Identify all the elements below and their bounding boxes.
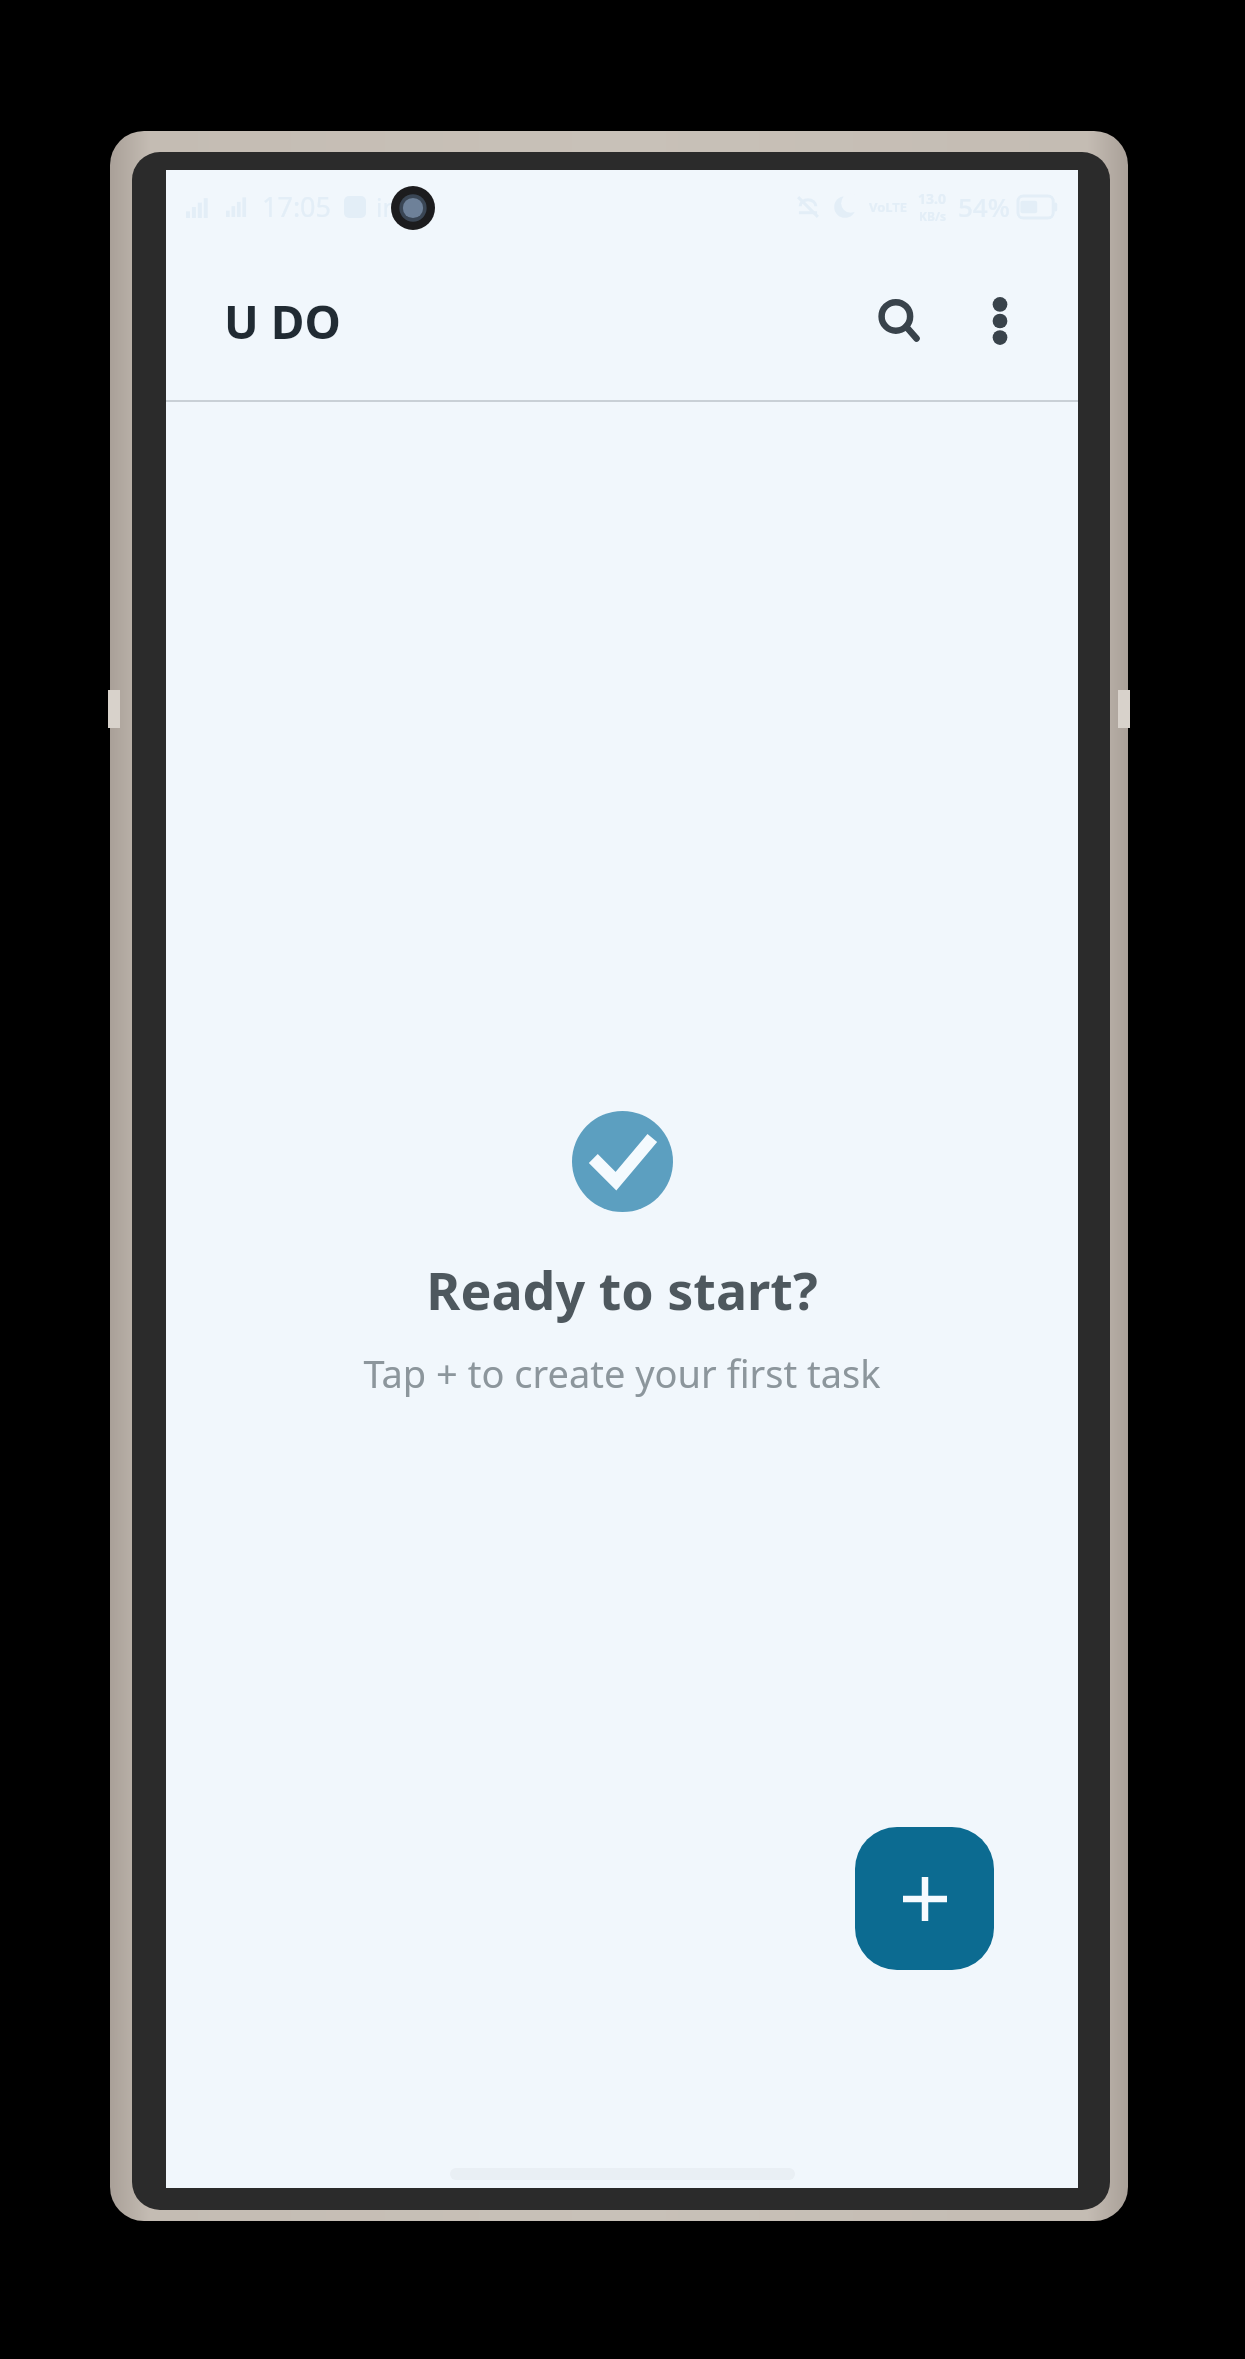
staticText: 17:05 bbox=[262, 188, 332, 225]
staticText: in bbox=[376, 190, 398, 224]
staticText: Tap + to create your first task bbox=[363, 1347, 881, 1399]
staticText: U DO bbox=[224, 290, 341, 353]
button[interactable]: More options bbox=[958, 279, 1042, 363]
staticText: KB/s bbox=[919, 208, 946, 224]
staticText: VoLTE bbox=[869, 198, 908, 216]
staticText: Ready to start? bbox=[426, 1254, 818, 1325]
button[interactable]: Add task bbox=[855, 1827, 994, 1970]
button[interactable]: Search bbox=[858, 279, 942, 363]
staticText: 13.0 bbox=[918, 189, 946, 208]
staticText: 54% bbox=[958, 189, 1010, 224]
